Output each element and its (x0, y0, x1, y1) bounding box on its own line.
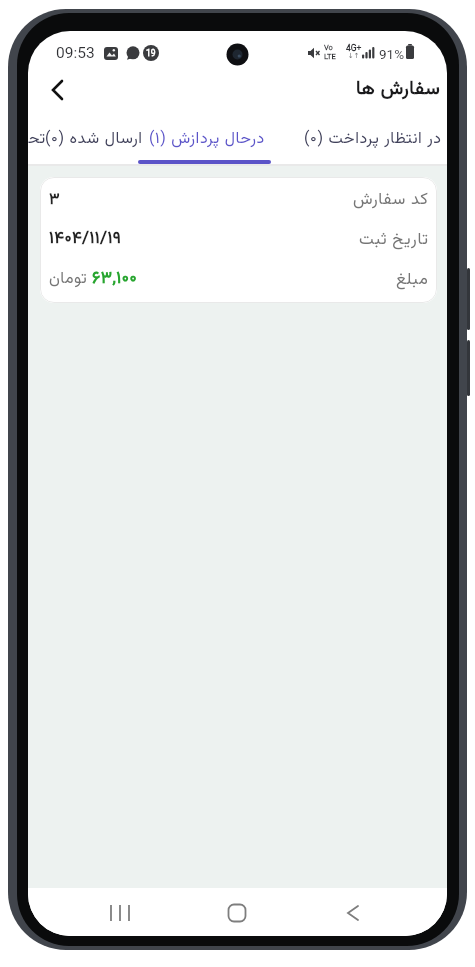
staticText: مبلغ (396, 267, 429, 293)
staticText: در انتظار پرداخت (۰) (304, 127, 442, 152)
button[interactable] (221, 904, 253, 922)
button[interactable]: ۳ (40, 177, 437, 303)
staticText: Vo (324, 43, 333, 52)
staticText: 91% (379, 46, 405, 62)
staticText: ۱۴۰۴/۱۱/۱۹ (49, 226, 122, 253)
button[interactable]: ارسال شده (۰) (28, 125, 194, 154)
button[interactable] (338, 904, 370, 922)
button[interactable]: تحویل شده (۰) (28, 125, 95, 154)
staticText: 4G+ (346, 43, 362, 53)
staticText: LTE (324, 52, 336, 61)
staticText: کد سفارش (353, 187, 429, 213)
staticText: تاریخ ثبت (359, 227, 429, 253)
staticText: 09:53 (56, 44, 95, 62)
staticText: ↓↑ (348, 52, 360, 60)
staticText: 19 (146, 48, 156, 58)
staticText: ۶۳,۱۰۰ (92, 266, 138, 293)
button[interactable]: در انتظار پرداخت (۰) (273, 125, 447, 154)
staticText: سفارش ها (356, 75, 441, 105)
staticText: درحال پردازش (۱) (149, 127, 265, 152)
button[interactable] (104, 904, 136, 922)
button[interactable]: درحال پردازش (۱) (107, 125, 307, 154)
button[interactable] (45, 73, 79, 107)
staticText: ارسال شده (۰) (45, 127, 143, 152)
staticText: تحویل شده (۰) (28, 127, 46, 152)
staticText: ۳ (49, 188, 60, 213)
staticText: تومان (49, 267, 88, 292)
